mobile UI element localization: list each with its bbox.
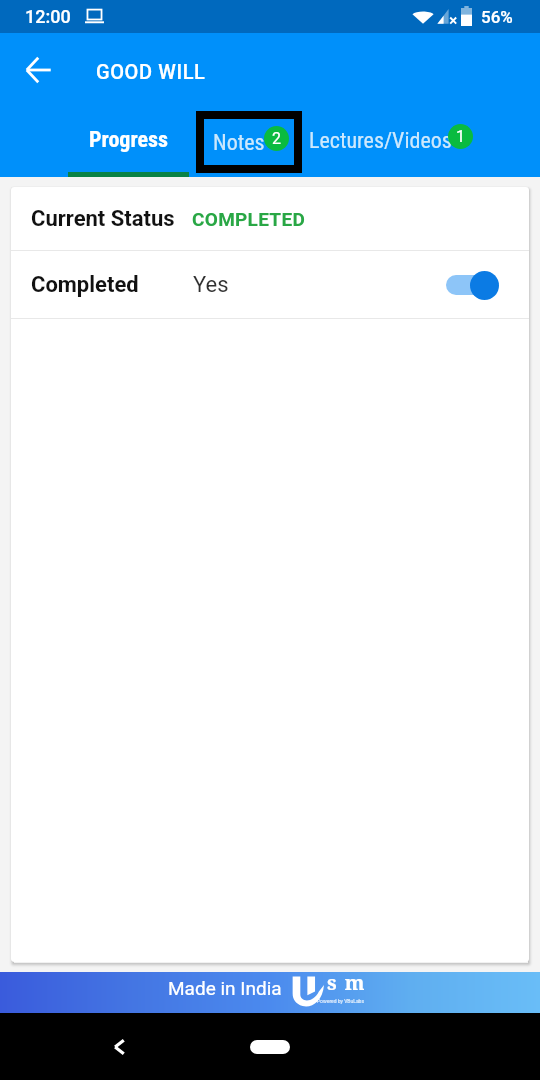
staticText: Progress [89, 127, 169, 153]
staticText: Notes [213, 130, 265, 156]
button[interactable]: Notes [196, 111, 302, 173]
staticText: s m [327, 969, 367, 996]
staticText: 56% [481, 7, 513, 27]
button[interactable] [446, 268, 498, 302]
button[interactable]: Back [14, 46, 62, 94]
button[interactable]: Current Status [11, 187, 529, 250]
button[interactable]: Progress [68, 116, 189, 164]
staticText: Completed [31, 272, 139, 298]
button[interactable]: Completed [11, 251, 529, 318]
staticText: Made in India [168, 977, 282, 999]
button[interactable]: Home [250, 1040, 290, 1054]
staticText: 1 [456, 127, 465, 146]
staticText: Lectures/Videos [309, 128, 452, 154]
staticText: 2 [272, 129, 281, 148]
staticText: 12:00 [25, 6, 71, 27]
staticText: Powered by VBuLabs [317, 998, 364, 1004]
staticText: Yes [193, 272, 229, 298]
staticText: COMPLETED [192, 208, 306, 230]
staticText: Current Status [31, 206, 175, 232]
button[interactable]: Lectures/Videos [306, 116, 482, 164]
staticText: GOOD WILL [96, 60, 206, 83]
button[interactable]: Back [99, 1027, 139, 1067]
